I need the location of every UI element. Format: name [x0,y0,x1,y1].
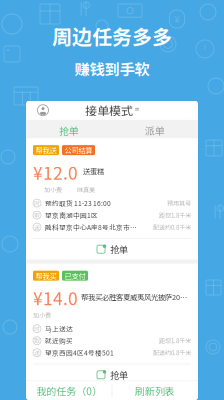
button[interactable]: 抢单 [33,364,191,385]
staticText: 融科望京中心A座8号北京市朝阳… [45,222,143,232]
staticText: 送 [34,223,40,231]
staticText: 我的任务（0） [36,384,102,398]
staticText: 公司结算 [64,145,92,155]
staticText: 取 [34,336,40,345]
staticText: 距您1.8千米 [159,211,191,220]
staticText: 就近购买 [45,336,73,346]
staticText: 加小费 [44,185,62,194]
staticText: 望京西园4区4号楼501 [45,348,114,358]
staticText: 配送约0.8千米 [153,223,191,232]
staticText: 抢单 [110,368,128,381]
staticText: 加小费 [33,311,51,320]
staticText: ¥12.0 [33,160,78,185]
staticText: 帮我买 [35,270,56,281]
staticText: ¥ [174,12,179,26]
button[interactable]: 派单 [112,120,198,141]
staticText: 取 [34,211,40,219]
staticText: 预用其号 [167,199,191,208]
staticText: ¥14.0 [33,285,78,310]
staticText: 配送约0.8千米 [153,348,191,357]
staticText: 马上送达 [45,324,73,334]
staticText: 接单模式 [85,101,133,119]
staticText: 抢单 [59,123,79,138]
staticText: 抢单 [110,242,128,256]
staticText: 距您1.8千米 [159,336,191,345]
staticText: 味真美 [77,185,95,194]
button[interactable]: 我的任务（0） [27,381,112,400]
staticText: 望京南湖中园1区 [45,210,98,220]
button[interactable]: 抢单 [33,239,191,260]
staticText: 送 [34,348,40,357]
staticText: 已支付 [64,270,85,281]
button[interactable]: 个人中心 [32,99,54,121]
staticText: 帮我送 [35,145,56,155]
staticText: 预约取货 11-23 16:00 [45,198,111,208]
staticText: 时 [34,199,40,207]
button[interactable]: 抢单 [26,120,112,141]
staticText: 时 [34,324,40,333]
staticText: 派单 [145,123,165,138]
staticText: 周边任务多多 [52,21,172,50]
staticText: 刷新列表 [135,384,175,398]
staticText: 帮我买必胜客夏威夷风光披萨200克 [81,291,188,302]
button[interactable]: 刷新列表 [112,381,197,400]
staticText: 赚钱到手软 [74,57,149,80]
staticText: 送蛋糕 [83,166,104,176]
